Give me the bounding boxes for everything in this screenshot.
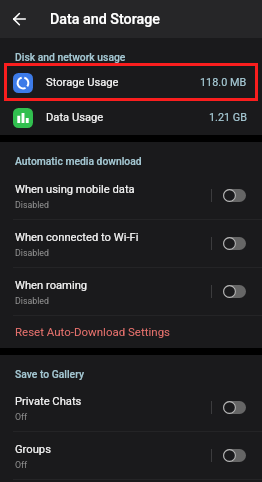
staticText: Disabled [15, 248, 49, 258]
staticText: 118.0 MB [200, 76, 247, 89]
button[interactable]: Back [8, 8, 31, 31]
staticText: 1.21 GB [209, 111, 247, 124]
button[interactable]: When roaming [0, 267, 262, 315]
staticText: Private Chats [15, 395, 82, 408]
staticText: Storage Usage [46, 76, 119, 89]
staticText: Off [15, 460, 28, 470]
button[interactable]: When connected to Wi-Fi [0, 219, 262, 267]
staticText: Data Usage [46, 111, 104, 124]
staticText: When using mobile data [15, 183, 135, 196]
button[interactable]: Reset Auto-Download Settings [0, 315, 262, 348]
staticText: Groups [15, 443, 51, 456]
button[interactable]: Groups [0, 431, 262, 479]
staticText: Off [15, 412, 28, 422]
staticText: Disk and network usage [15, 51, 126, 63]
button[interactable]: Data Usage [0, 100, 262, 135]
staticText: When roaming [15, 279, 88, 292]
staticText: Reset Auto-Download Settings [15, 325, 171, 338]
staticText: When connected to Wi-Fi [15, 231, 139, 244]
button[interactable]: Storage Usage [0, 65, 262, 100]
button[interactable]: When using mobile data [0, 171, 262, 219]
staticText: Automatic media download [15, 155, 142, 167]
button[interactable]: Private Chats [0, 383, 262, 431]
staticText: Disabled [15, 200, 49, 210]
staticText: Disabled [15, 296, 49, 306]
staticText: Data and Storage [50, 11, 160, 28]
staticText: Save to Gallery [15, 368, 84, 380]
